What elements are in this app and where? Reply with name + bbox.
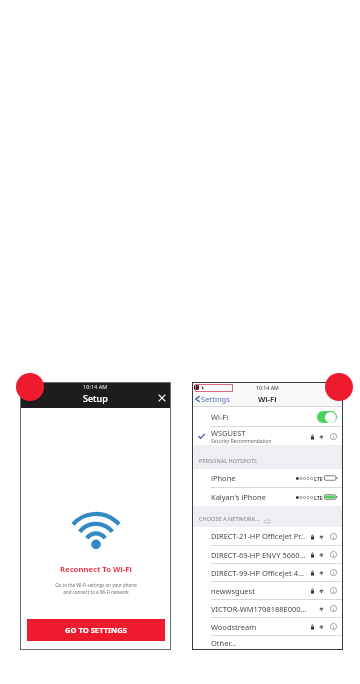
button[interactable]: DIRECT-21-HP OfficeJet Pr... xyxy=(192,527,343,545)
staticText: Other... xyxy=(211,638,237,648)
staticText: i xyxy=(333,551,335,558)
button[interactable]: DIRECT-99-HP OfficeJet 4... xyxy=(192,564,343,581)
button[interactable]: More info xyxy=(330,433,337,440)
staticText: i xyxy=(333,433,335,440)
staticText: WSGUEST xyxy=(211,428,246,438)
staticText: Security Recommendation xyxy=(211,438,272,445)
staticText: i xyxy=(333,623,335,630)
staticText: DIRECT-99-HP OfficeJet 4... xyxy=(211,568,304,578)
staticText: Go to the Wi-Fi settings on your phone a… xyxy=(55,582,137,595)
staticText: Reconnect To Wi-Fi xyxy=(60,564,132,574)
staticText: i xyxy=(333,569,335,576)
button[interactable]: Other... xyxy=(192,636,343,650)
button[interactable]: Woodstream xyxy=(192,618,343,635)
button[interactable]: Settings xyxy=(195,394,230,404)
staticText: DIRECT-69-HP ENVY 5660... xyxy=(211,550,306,560)
staticText: Setup xyxy=(83,392,108,404)
staticText: i xyxy=(333,605,335,612)
staticText: 10:14 AM xyxy=(83,383,108,391)
button[interactable]: DIRECT-69-HP ENVY 5660... xyxy=(192,546,343,563)
button[interactable]: More info xyxy=(330,605,337,612)
staticText: Woodstream xyxy=(211,622,257,632)
staticText: Settings xyxy=(201,394,230,404)
staticText: PERSONAL HOTSPOTS xyxy=(199,457,257,465)
staticText: newwsguest xyxy=(211,586,255,596)
button[interactable]: VICTOR-WM1708188E000... xyxy=(192,600,343,617)
staticText: GO TO SETTINGS xyxy=(65,625,127,635)
button[interactable]: iPhone xyxy=(192,469,343,487)
staticText: LTE xyxy=(314,494,323,501)
button[interactable]: More info xyxy=(330,587,337,594)
button[interactable]: WSGUEST xyxy=(192,427,343,445)
button[interactable]: More info xyxy=(330,551,337,558)
staticText: VICTOR-WM1708188E000... xyxy=(211,604,307,614)
staticText: i xyxy=(333,587,335,594)
button[interactable]: newwsguest xyxy=(192,582,343,599)
button[interactable]: More info xyxy=(330,533,337,540)
button[interactable]: Kalyan's iPhone xyxy=(192,488,343,506)
staticText: DIRECT-21-HP OfficeJet Pr... xyxy=(211,531,307,541)
button[interactable]: Wi-Fi xyxy=(192,407,343,426)
button[interactable]: Close xyxy=(156,392,168,404)
staticText: Wi-Fi xyxy=(258,394,277,404)
staticText: iPhone xyxy=(211,473,236,483)
staticText: 10:14 AM xyxy=(256,384,279,391)
staticText: i xyxy=(333,533,335,540)
staticText: CHOOSE A NETWORK... xyxy=(199,515,260,523)
button[interactable]: More info xyxy=(330,569,337,576)
staticText: Kalyan's iPhone xyxy=(211,492,266,502)
button[interactable]: GO TO SETTINGS xyxy=(27,619,165,641)
button[interactable]: More info xyxy=(330,623,337,630)
staticText: Wi-Fi xyxy=(211,412,229,422)
staticText: LTE xyxy=(314,475,323,482)
